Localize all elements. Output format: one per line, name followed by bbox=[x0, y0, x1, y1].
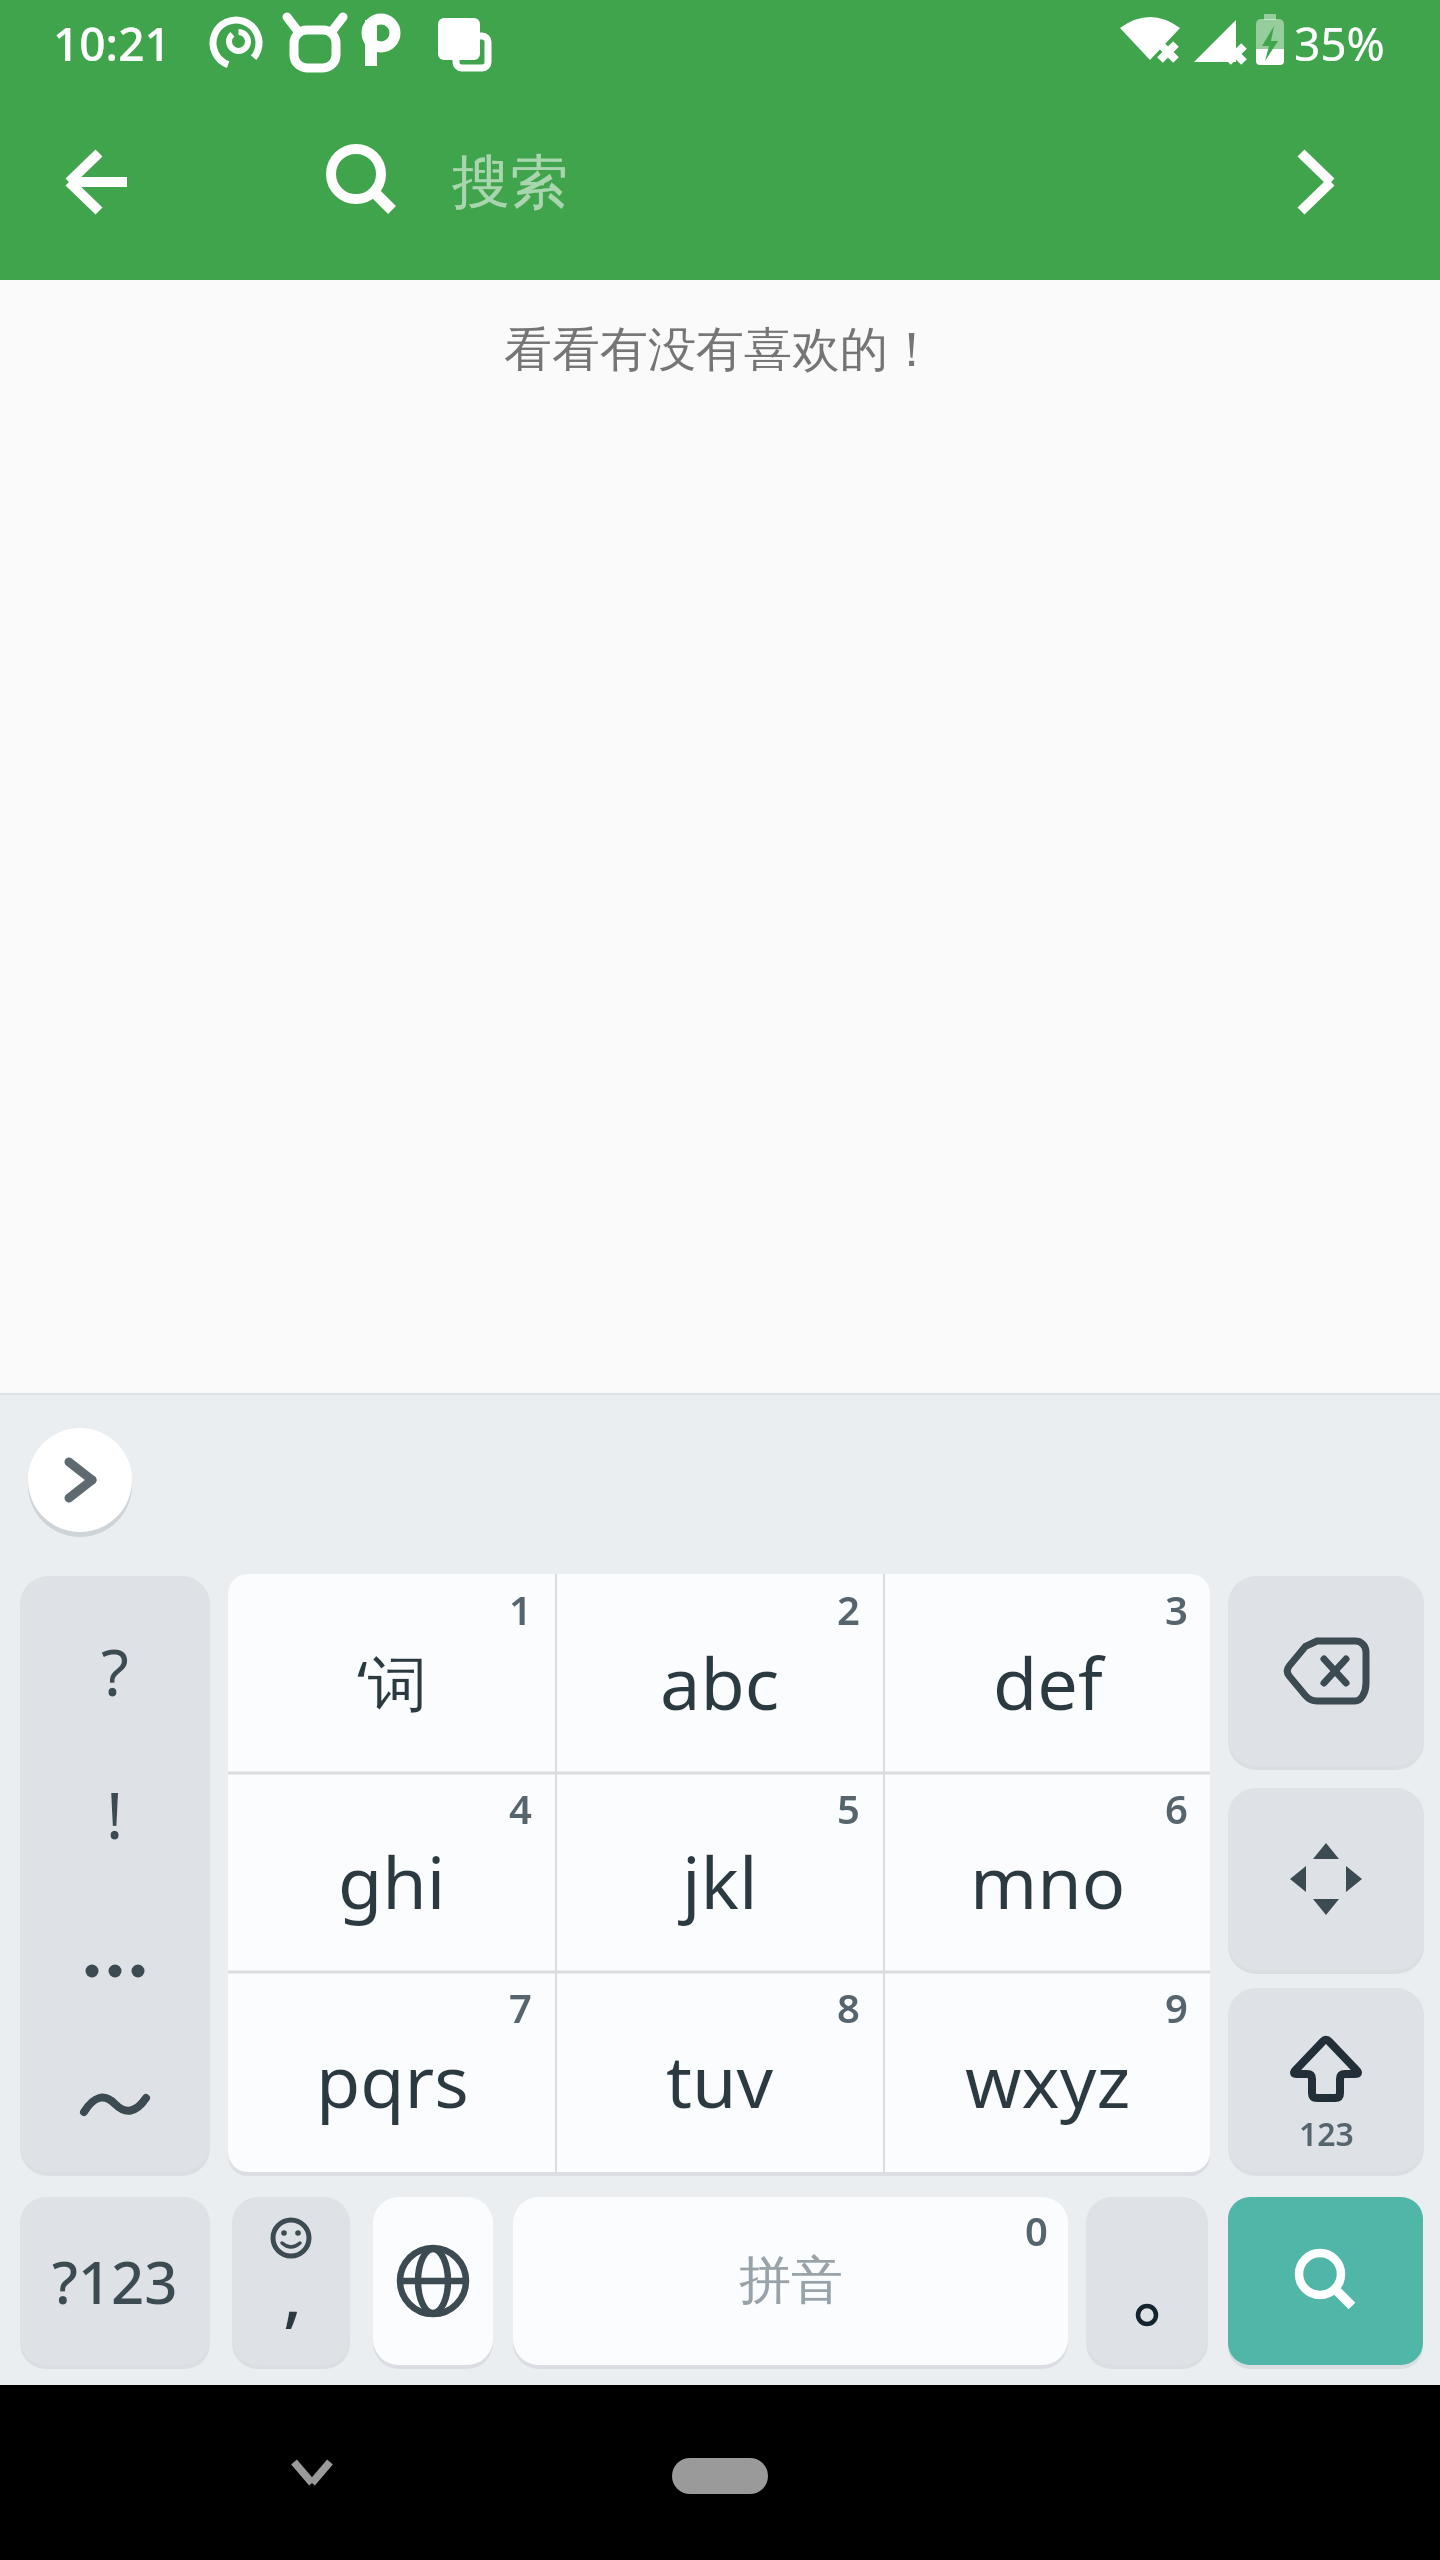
button[interactable]: abc bbox=[556, 1574, 884, 1773]
staticText: 7 bbox=[509, 1980, 532, 2034]
button[interactable] bbox=[34, 118, 162, 246]
staticText: 4 bbox=[509, 1781, 532, 1835]
button[interactable]: 123 bbox=[1228, 1988, 1424, 2172]
staticText: 1 bbox=[509, 1582, 532, 1636]
staticText: 3 bbox=[1165, 1582, 1188, 1636]
button[interactable]: pqrs bbox=[228, 1972, 556, 2171]
staticText: ! bbox=[106, 1771, 124, 1858]
staticText: 6 bbox=[1165, 1781, 1188, 1835]
staticText: 8 bbox=[837, 1980, 860, 2034]
staticText: ? bbox=[101, 1628, 129, 1715]
staticText: 2 bbox=[837, 1582, 860, 1636]
staticText: 5 bbox=[837, 1781, 860, 1835]
button[interactable]: wxyz bbox=[884, 1972, 1210, 2171]
staticText: def bbox=[993, 1633, 1103, 1731]
button[interactable] bbox=[1228, 1788, 1424, 1970]
staticText: 拼音 bbox=[739, 2248, 843, 2314]
staticText: 35% bbox=[1294, 12, 1385, 75]
staticText: wxyz bbox=[965, 2031, 1131, 2129]
button[interactable] bbox=[1228, 2197, 1423, 2365]
staticText: tuv bbox=[666, 2031, 774, 2129]
button[interactable]: , bbox=[232, 2197, 350, 2365]
button[interactable]: def bbox=[884, 1574, 1210, 1773]
staticText: pqrs bbox=[316, 2031, 469, 2129]
button[interactable]: jkl bbox=[556, 1773, 884, 1972]
button[interactable]: 拼音 bbox=[513, 2197, 1068, 2365]
button[interactable] bbox=[288, 2455, 336, 2491]
staticText: 10:21 bbox=[53, 12, 171, 75]
button[interactable] bbox=[28, 1428, 132, 1532]
button[interactable] bbox=[373, 2197, 493, 2365]
button[interactable]: ?123 bbox=[20, 2197, 210, 2365]
staticText: 0 bbox=[1025, 2203, 1048, 2257]
button[interactable] bbox=[1086, 2197, 1208, 2365]
staticText: 9 bbox=[1165, 1980, 1188, 2034]
button[interactable]: tuv bbox=[556, 1972, 884, 2171]
staticText: ghi bbox=[338, 1832, 446, 1930]
staticText: ‘词 bbox=[357, 1641, 428, 1723]
staticText: 123 bbox=[1299, 2112, 1354, 2156]
staticText: 搜索 bbox=[452, 146, 568, 219]
button[interactable]: ‘词 bbox=[228, 1574, 556, 1773]
staticText: , bbox=[283, 2245, 303, 2340]
staticText: abc bbox=[660, 1633, 780, 1731]
button[interactable]: ghi bbox=[228, 1773, 556, 1972]
button[interactable]: mno bbox=[884, 1773, 1210, 1972]
button[interactable] bbox=[672, 2458, 768, 2494]
staticText: 看看有没有喜欢的！ bbox=[504, 320, 936, 380]
staticText: jkl bbox=[682, 1832, 758, 1930]
staticText: ?123 bbox=[52, 2242, 178, 2321]
staticText: mno bbox=[970, 1832, 1126, 1930]
button[interactable] bbox=[1252, 118, 1380, 246]
button[interactable]: ? bbox=[20, 1576, 210, 2172]
button[interactable] bbox=[1228, 1576, 1424, 1766]
